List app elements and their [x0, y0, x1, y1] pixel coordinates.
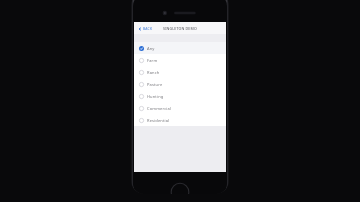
button[interactable]: Farm	[134, 54, 226, 66]
button[interactable]: Home	[170, 182, 190, 194]
staticText: Commercial	[147, 106, 171, 111]
staticText: Hunting	[147, 94, 164, 99]
button[interactable]: Back	[137, 25, 154, 32]
staticText: Farm	[147, 58, 158, 63]
staticText: Any	[147, 46, 155, 51]
staticText: SINGLETON DEMO	[163, 26, 197, 31]
staticText: Ranch	[147, 70, 160, 75]
staticText: Pasture	[147, 82, 163, 87]
button[interactable]: Residential	[134, 114, 226, 126]
button[interactable]: Any	[134, 42, 226, 54]
button[interactable]: Ranch	[134, 66, 226, 78]
staticText: BACK	[143, 26, 153, 31]
button[interactable]: Hunting	[134, 90, 226, 102]
button[interactable]: Pasture	[134, 78, 226, 90]
button[interactable]: Commercial	[134, 102, 226, 114]
staticText: Residential	[147, 118, 170, 123]
